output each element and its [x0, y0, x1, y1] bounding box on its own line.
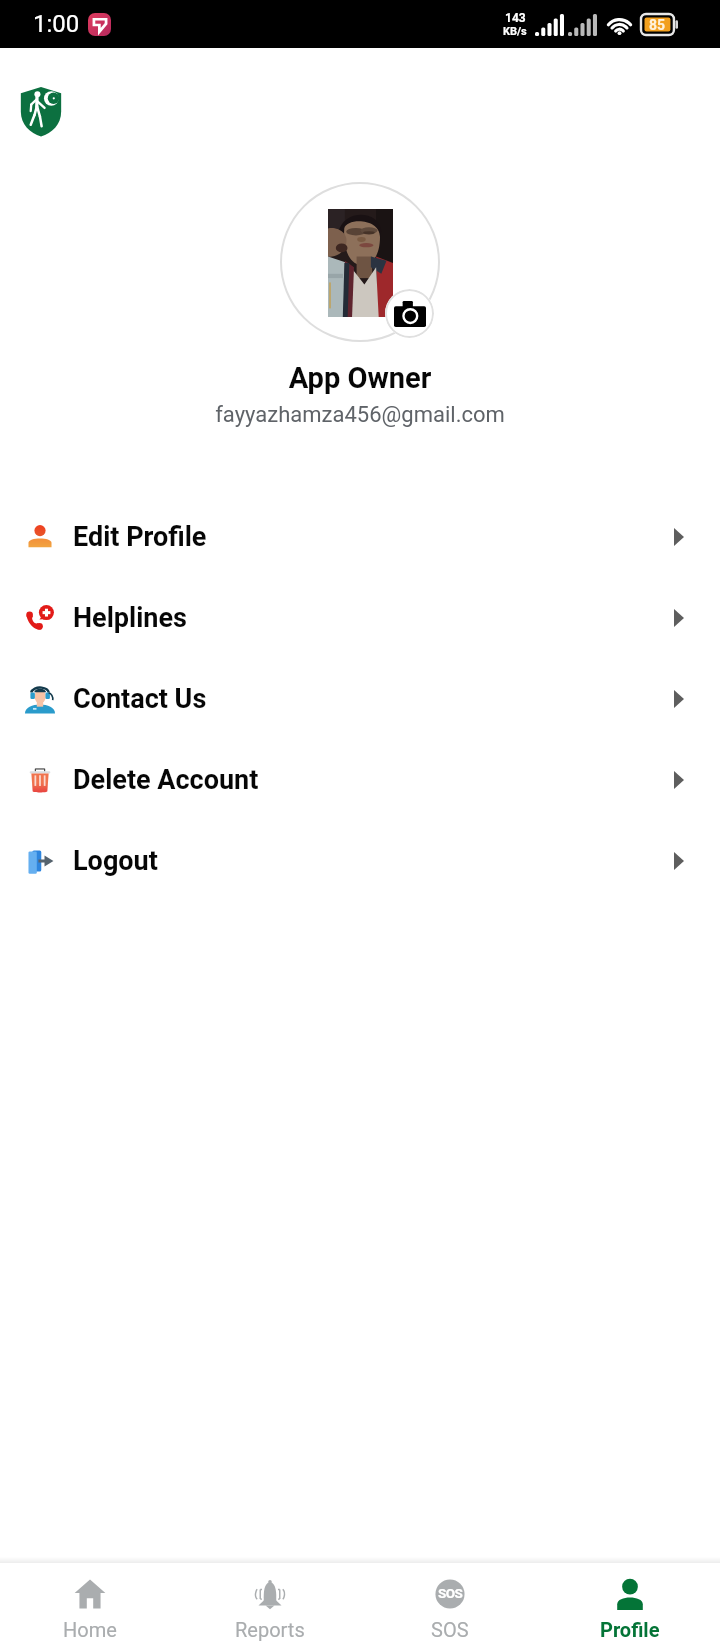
staticText: 143	[505, 11, 526, 25]
staticText: Reports	[235, 1618, 305, 1641]
staticText: Contact Us	[73, 683, 207, 715]
button[interactable]: Profile	[540, 1563, 720, 1650]
staticText: 1:00	[33, 10, 80, 38]
button[interactable]: Contact Us	[0, 658, 720, 739]
button[interactable]: Profile photo	[280, 182, 440, 342]
staticText: Edit Profile	[73, 521, 207, 553]
button[interactable]: Delete Account	[0, 739, 720, 820]
staticText: SOS	[431, 1618, 469, 1641]
button[interactable]: Reports	[180, 1563, 360, 1650]
button[interactable]: Change profile photo	[385, 289, 434, 338]
staticText: Logout	[73, 845, 158, 877]
staticText: Home	[63, 1618, 117, 1641]
button[interactable]: Helplines	[0, 577, 720, 658]
staticText: KB/s	[503, 25, 527, 38]
staticText: SOS	[438, 1585, 463, 1601]
button[interactable]: Logout	[0, 820, 720, 901]
button[interactable]: Edit Profile	[0, 496, 720, 577]
staticText: Helplines	[73, 602, 187, 634]
button[interactable]: Home	[0, 1563, 180, 1650]
button[interactable]: App logo	[20, 86, 62, 137]
staticText: Delete Account	[73, 764, 259, 796]
staticText: Profile	[600, 1618, 660, 1641]
staticText: fayyazhamza456@gmail.com	[0, 402, 720, 428]
staticText: 85	[649, 17, 666, 33]
staticText: App Owner	[0, 361, 720, 395]
button[interactable]: SOS	[360, 1563, 540, 1650]
